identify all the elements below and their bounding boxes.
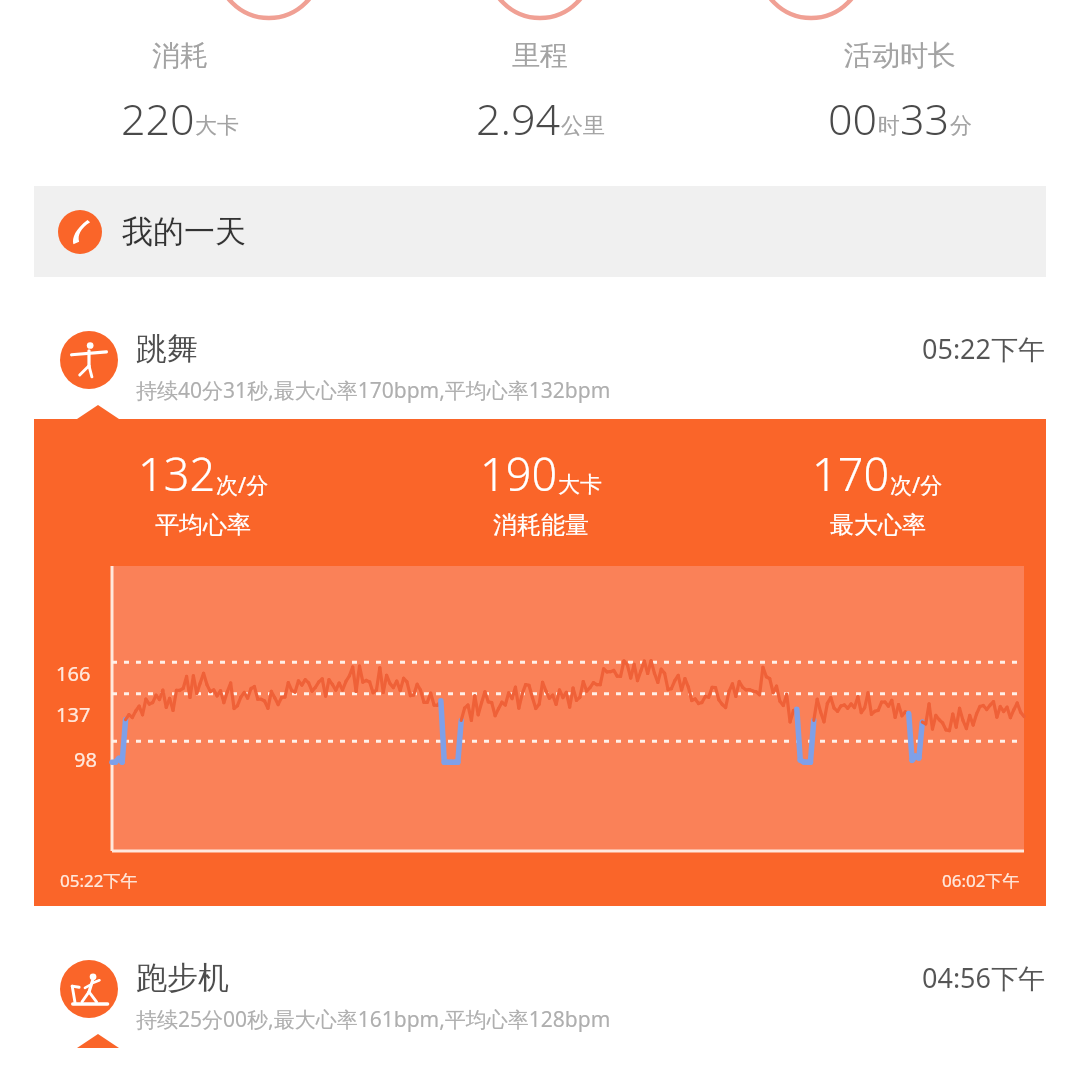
staticText: 166 — [56, 660, 91, 687]
staticText: 大卡 — [558, 471, 602, 499]
staticText: 98 — [74, 746, 97, 773]
button[interactable]: 里程 — [360, 16, 720, 144]
staticText: 我的一天 — [122, 212, 246, 251]
staticText: 00 — [828, 89, 878, 144]
staticText: 220 — [121, 89, 195, 144]
staticText: 次/分 — [216, 469, 269, 499]
staticText: 190 — [480, 443, 558, 504]
staticText: 里程 — [512, 38, 568, 73]
staticText: 跳舞 — [136, 329, 198, 368]
staticText: 2.94 — [476, 89, 561, 144]
staticText: 33 — [900, 89, 950, 144]
staticText: 活动时长 — [844, 38, 956, 73]
staticText: 跑步机 — [136, 958, 229, 997]
staticText: 消耗能量 — [493, 510, 589, 540]
staticText: 次/分 — [890, 469, 943, 499]
staticText: 最大心率 — [830, 510, 926, 540]
staticText: 大卡 — [195, 112, 239, 140]
staticText: 持续25分00秒,最大心率161bpm,平均心率128bpm — [136, 1005, 611, 1034]
staticText: 持续40分31秒,最大心率170bpm,平均心率132bpm — [136, 376, 611, 405]
staticText: 05:22下午 — [922, 330, 1046, 367]
other: 跑步机 — [60, 960, 118, 1018]
staticText: 分 — [950, 112, 972, 140]
other: 跳舞 — [60, 331, 118, 389]
staticText: 137 — [56, 701, 91, 728]
button[interactable]: 我的一天 — [34, 186, 1046, 277]
staticText: 05:22下午 — [60, 869, 138, 892]
button[interactable]: 跑步机 — [34, 958, 1046, 1034]
staticText: 04:56下午 — [922, 959, 1046, 996]
staticText: 06:02下午 — [942, 869, 1020, 892]
staticText: 时 — [878, 112, 900, 140]
staticText: 平均心率 — [155, 510, 251, 540]
button[interactable]: 消耗 — [0, 16, 360, 144]
staticText: 消耗 — [152, 38, 208, 73]
button[interactable]: 活动时长 — [720, 16, 1080, 144]
staticText: 170 — [812, 443, 890, 504]
staticText: 公里 — [561, 112, 605, 140]
staticText: 132 — [138, 443, 216, 504]
button[interactable]: 132 — [34, 419, 1046, 906]
other: 我的一天 — [58, 210, 102, 254]
button[interactable]: 跳舞 — [34, 329, 1046, 405]
